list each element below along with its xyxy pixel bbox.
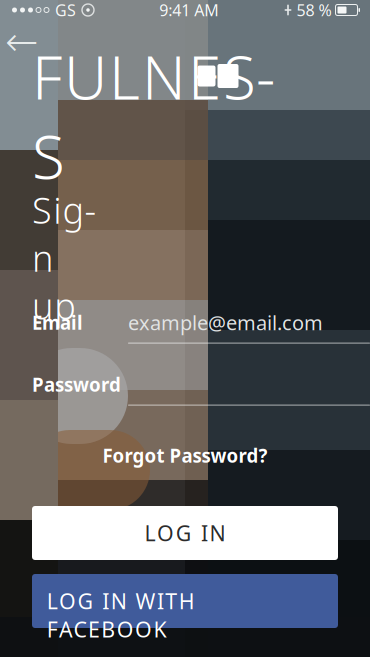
- staticText: LOG IN WITH FACEBOOK: [47, 587, 323, 615]
- staticText: ←: [5, 19, 39, 65]
- button[interactable]: LOG IN: [32, 506, 338, 560]
- staticText: 9:41 AM: [159, 0, 219, 21]
- staticText: 58 %: [296, 0, 331, 21]
- button[interactable]: Back: [0, 22, 44, 62]
- button[interactable]: Forgot Password?: [88, 435, 281, 476]
- staticText: LOG IN: [144, 519, 225, 547]
- staticText: FULNESS: [32, 36, 275, 196]
- staticText: Email: [32, 310, 83, 335]
- staticText: GS: [55, 0, 76, 21]
- staticText: Forgot Password?: [102, 443, 267, 468]
- button[interactable]: LOG IN WITH FACEBOOK: [32, 574, 338, 628]
- staticText: Sign up: [32, 186, 107, 282]
- staticText: Password: [32, 372, 121, 397]
- staticText: example@email.com: [128, 309, 323, 336]
